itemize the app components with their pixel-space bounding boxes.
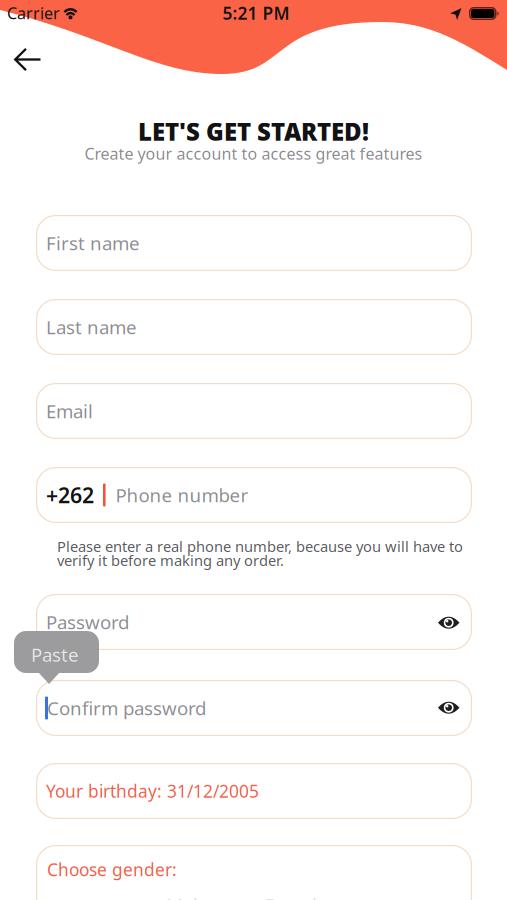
button[interactable]: Email (36, 383, 472, 439)
button[interactable]: Paste (14, 631, 99, 684)
staticText: verify it before making any order. (57, 550, 284, 570)
staticText: Carrier (7, 2, 60, 24)
staticText: Male (166, 892, 209, 900)
staticText: First name (46, 231, 140, 255)
staticText: Paste (31, 642, 79, 667)
button[interactable]: +262 (36, 467, 472, 523)
staticText: Confirm password (47, 696, 206, 720)
button[interactable]: Password (36, 594, 472, 650)
button[interactable]: Back (6, 39, 50, 79)
staticText: Choose gender: (47, 858, 177, 881)
button[interactable]: First name (36, 215, 472, 271)
button[interactable]: Your birthday: 31/12/2005 (36, 763, 472, 819)
staticText: +262 (46, 481, 94, 509)
staticText: Create your account to access great feat… (84, 143, 422, 164)
button[interactable]: Choose gender: (36, 845, 472, 900)
button[interactable]: Last name (36, 299, 472, 355)
staticText: Email (46, 399, 93, 423)
staticText: 5:21 PM (222, 1, 289, 24)
staticText: Phone number (116, 483, 249, 507)
staticText: LET'S GET STARTED! (138, 116, 369, 147)
button[interactable]: Show password (431, 608, 467, 638)
staticText: Female (264, 892, 328, 900)
button[interactable]: Show password (431, 693, 467, 723)
button[interactable]: Confirm password (36, 680, 472, 736)
staticText: Please enter a real phone number, becaus… (57, 536, 463, 556)
staticText: Last name (46, 315, 137, 339)
staticText: Your birthday: 31/12/2005 (46, 779, 259, 802)
staticText: Password (46, 610, 129, 634)
